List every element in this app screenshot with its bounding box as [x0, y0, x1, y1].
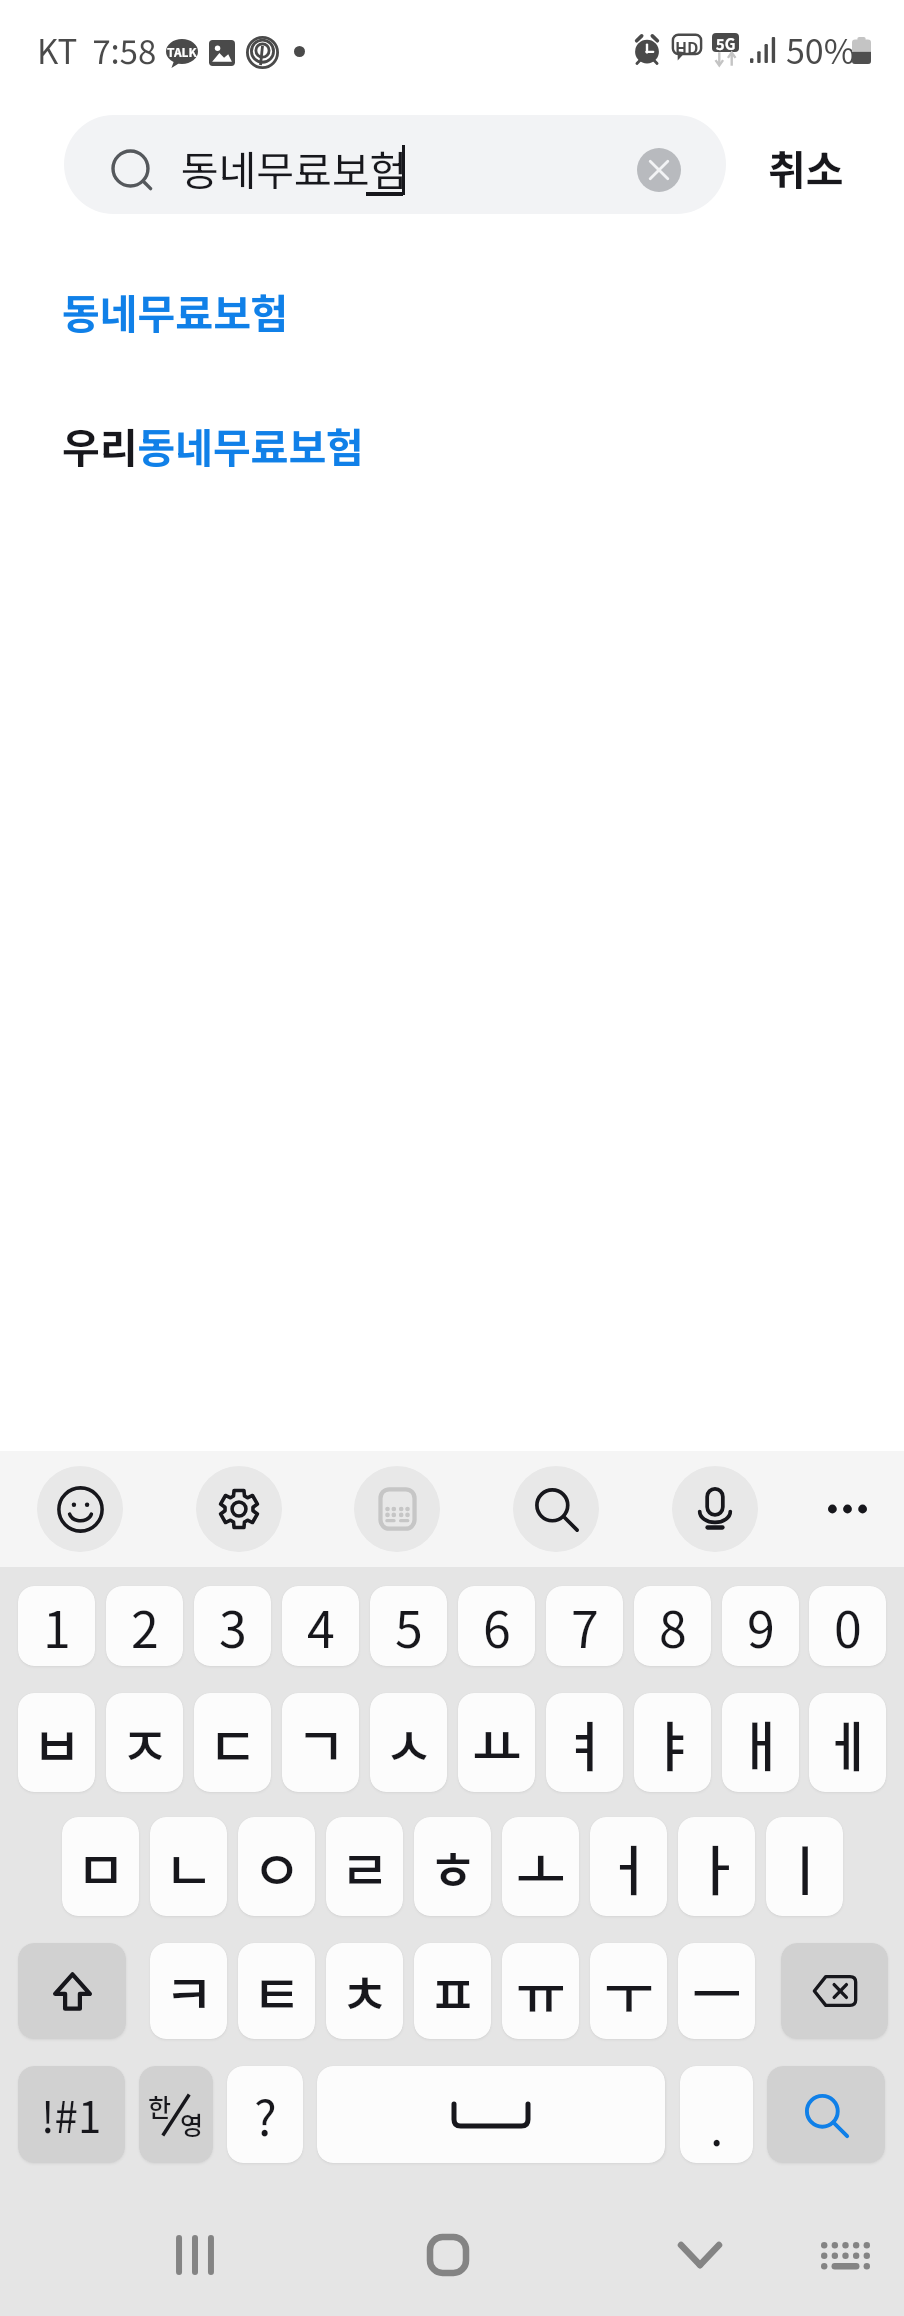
button[interactable]: ? — [227, 2066, 303, 2163]
staticText: ㅍ — [428, 1952, 478, 2030]
button[interactable]: Switch keyboard — [785, 2205, 904, 2305]
button[interactable]: 7 — [546, 1586, 623, 1666]
staticText: 50% — [786, 25, 856, 74]
button[interactable]: Search — [513, 1466, 599, 1552]
staticText: 취소 — [768, 137, 844, 196]
button[interactable]: ㅍ — [414, 1943, 491, 2039]
button[interactable]: Hide keyboard — [640, 2205, 760, 2305]
staticText: ? — [254, 2080, 277, 2150]
staticText: 2 — [131, 1590, 159, 1662]
button[interactable]: ㄹ — [326, 1817, 403, 1916]
button[interactable]: ㅌ — [238, 1943, 315, 2039]
button[interactable]: ㅎ — [414, 1817, 491, 1916]
button[interactable]: ㅐ — [722, 1693, 799, 1792]
button[interactable]: Search — [767, 2066, 885, 2163]
staticText: 5G — [716, 33, 736, 52]
staticText: ㅁ — [76, 1828, 126, 1906]
button[interactable]: ㅂ — [18, 1693, 95, 1792]
button[interactable]: 취소 — [726, 115, 886, 214]
staticText: 5 — [395, 1590, 423, 1662]
staticText: ㅔ — [823, 1704, 873, 1782]
button[interactable]: 동네무료보험 — [64, 115, 726, 214]
staticText: ㅕ — [560, 1704, 610, 1782]
button[interactable]: ㅇ — [238, 1817, 315, 1916]
staticText: ㅠ — [516, 1952, 566, 2030]
staticText: 동네무료보험 — [62, 281, 289, 340]
button[interactable]: Voice input — [672, 1466, 758, 1552]
staticText: ㅏ — [692, 1828, 742, 1906]
button[interactable]: 2 — [106, 1586, 183, 1666]
button[interactable]: Emoji — [37, 1466, 123, 1552]
button[interactable]: Space — [317, 2066, 665, 2163]
button[interactable]: !#1 — [18, 2066, 125, 2163]
staticText: KT 7:58 — [37, 26, 157, 74]
button[interactable]: ㅓ — [590, 1817, 667, 1916]
button[interactable]: 1 — [18, 1586, 95, 1666]
button[interactable]: More options — [804, 1466, 890, 1552]
button[interactable]: 우리동네무료보험 — [0, 385, 904, 503]
button[interactable]: Korean English toggle — [139, 2066, 213, 2163]
button[interactable]: ㅠ — [502, 1943, 579, 2039]
button[interactable]: Shift — [18, 1943, 126, 2039]
staticText: ㅡ — [692, 1952, 742, 2030]
button[interactable]: 5 — [370, 1586, 447, 1666]
button[interactable]: ㅕ — [546, 1693, 623, 1792]
staticText: ㅂ — [32, 1704, 82, 1782]
staticText: ㄹ — [340, 1828, 390, 1906]
button[interactable]: ㅛ — [458, 1693, 535, 1792]
button[interactable]: 3 — [194, 1586, 271, 1666]
button[interactable]: Backspace — [781, 1943, 888, 2039]
staticText: 7 — [571, 1590, 599, 1662]
button[interactable]: ㅗ — [502, 1817, 579, 1916]
button[interactable]: ㅣ — [766, 1817, 843, 1916]
button[interactable]: Recents — [135, 2205, 255, 2305]
staticText: 동네무료보험 — [181, 138, 408, 197]
button[interactable]: ㄴ — [150, 1817, 227, 1916]
button[interactable]: ㅜ — [590, 1943, 667, 2039]
button[interactable]: 동네무료보험 — [0, 251, 904, 369]
staticText: 우리동네무료보험 — [62, 415, 364, 474]
button[interactable]: Home — [388, 2205, 508, 2305]
staticText: 4 — [307, 1590, 335, 1662]
button[interactable]: 9 — [722, 1586, 799, 1666]
staticText: 3 — [219, 1590, 247, 1662]
button[interactable]: 6 — [458, 1586, 535, 1666]
button[interactable]: ㄷ — [194, 1693, 271, 1792]
staticText: ㄷ — [208, 1704, 258, 1782]
button[interactable]: ㅈ — [106, 1693, 183, 1792]
button[interactable]: . — [680, 2066, 753, 2163]
button[interactable]: Clear text — [637, 148, 681, 192]
staticText: ㅐ — [736, 1704, 786, 1782]
staticText: ㅌ — [252, 1952, 302, 2030]
staticText: 0 — [834, 1590, 862, 1662]
staticText: 8 — [659, 1590, 687, 1662]
staticText: ㅛ — [472, 1704, 522, 1782]
staticText: HD — [675, 35, 699, 55]
button[interactable]: ㅁ — [62, 1817, 139, 1916]
button[interactable]: ㅅ — [370, 1693, 447, 1792]
button[interactable]: ㅊ — [326, 1943, 403, 2039]
staticText: ㅑ — [648, 1704, 698, 1782]
staticText: ㅅ — [384, 1704, 434, 1782]
button[interactable]: ㅏ — [678, 1817, 755, 1916]
button[interactable]: ㅡ — [678, 1943, 755, 2039]
staticText: 한 — [148, 2088, 172, 2124]
button[interactable]: 4 — [282, 1586, 359, 1666]
button[interactable]: ㅔ — [809, 1693, 886, 1792]
button[interactable]: 0 — [809, 1586, 886, 1666]
button[interactable]: ㄱ — [282, 1693, 359, 1792]
button[interactable]: 8 — [634, 1586, 711, 1666]
staticText: 1 — [43, 1590, 71, 1662]
staticText: ㅗ — [516, 1828, 566, 1906]
button[interactable]: ㅋ — [150, 1943, 227, 2039]
button[interactable]: Settings — [196, 1466, 282, 1552]
staticText: 영 — [180, 2106, 204, 2142]
staticText: . — [710, 2090, 724, 2160]
staticText: ㄱ — [296, 1704, 346, 1782]
button[interactable]: Keyboard layout — [354, 1466, 440, 1552]
button[interactable]: ㅑ — [634, 1693, 711, 1792]
staticText: ㅈ — [120, 1704, 170, 1782]
staticText: ㅣ — [780, 1828, 830, 1906]
staticText: ㅊ — [340, 1952, 390, 2030]
staticText: ㅜ — [604, 1952, 654, 2030]
